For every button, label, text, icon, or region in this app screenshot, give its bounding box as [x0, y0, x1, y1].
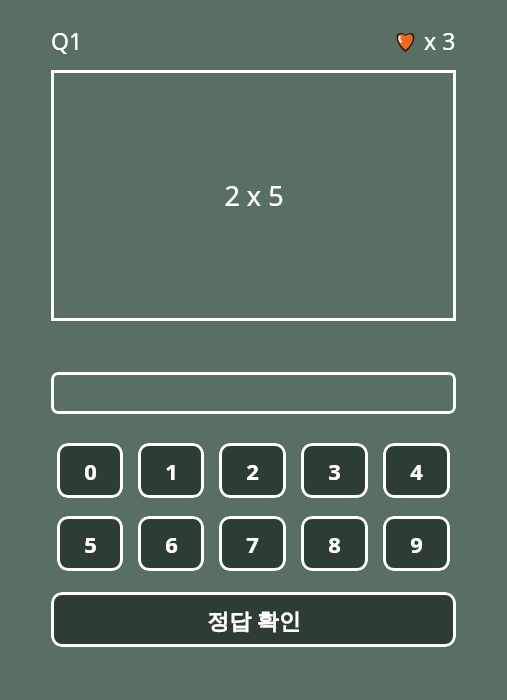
staticText: 7 [246, 529, 259, 559]
staticText: 0 [84, 456, 97, 486]
button[interactable]: 7 [219, 516, 286, 571]
button[interactable]: 0 [57, 443, 123, 498]
staticText: 정답 확인 [207, 605, 301, 635]
staticText: 9 [410, 529, 423, 559]
button[interactable]: 5 [57, 516, 123, 571]
staticText: 5 [84, 529, 97, 559]
staticText: 6 [165, 529, 178, 559]
staticText: Q1 [51, 25, 83, 56]
button[interactable]: 8 [301, 516, 368, 571]
button[interactable]: 2 [219, 443, 286, 498]
staticText: 8 [328, 529, 341, 559]
staticText: 2 [246, 456, 259, 486]
button[interactable]: 4 [383, 443, 450, 498]
other: Lives [394, 29, 417, 52]
button[interactable]: 3 [301, 443, 368, 498]
staticText: 1 [165, 456, 178, 486]
staticText: 4 [410, 456, 423, 486]
button[interactable]: 1 [138, 443, 204, 498]
button[interactable]: 6 [138, 516, 204, 571]
staticText: 3 [328, 456, 341, 486]
staticText: 2 x 5 [224, 177, 284, 214]
button[interactable]: 9 [383, 516, 450, 571]
button[interactable] [51, 372, 456, 414]
staticText: x 3 [424, 25, 456, 56]
button[interactable]: 정답 확인 [51, 592, 456, 647]
